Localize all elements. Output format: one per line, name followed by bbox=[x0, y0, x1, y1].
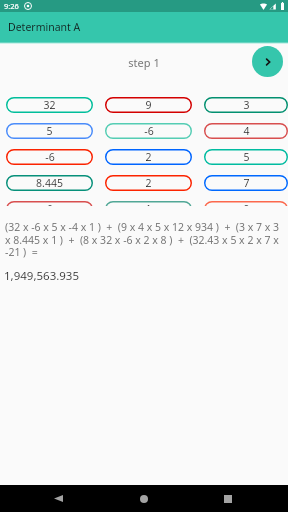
button[interactable]: 5 bbox=[6, 123, 93, 139]
button[interactable]: -6 bbox=[105, 123, 192, 139]
button[interactable]: 2 bbox=[105, 175, 192, 191]
button[interactable]: 7 bbox=[204, 175, 288, 191]
staticText: 5 bbox=[46, 124, 53, 138]
button[interactable]: Next step bbox=[252, 46, 283, 77]
staticText: Determinant A bbox=[8, 20, 81, 34]
staticText: -6 bbox=[45, 150, 55, 164]
staticText: -6 bbox=[144, 124, 154, 138]
button[interactable]: 6 bbox=[6, 201, 93, 206]
staticText: (32 x -6 x 5 x -4 x 1 ) + (9 x 4 x 5 x 1… bbox=[5, 220, 284, 259]
staticText: 9 bbox=[145, 98, 152, 112]
button[interactable]: 9 bbox=[204, 201, 288, 206]
button[interactable]: 5 bbox=[204, 149, 288, 165]
button[interactable]: 2 bbox=[105, 149, 192, 165]
staticText: 2 bbox=[145, 176, 152, 190]
button[interactable]: 8.445 bbox=[6, 175, 93, 191]
button[interactable]: 32 bbox=[6, 97, 93, 113]
button[interactable]: 9 bbox=[105, 97, 192, 113]
button[interactable]: Home bbox=[127, 485, 160, 512]
button[interactable]: Recents bbox=[211, 485, 244, 512]
button[interactable]: -6 bbox=[6, 149, 93, 165]
staticText: 5 bbox=[243, 150, 250, 164]
staticText: 3 bbox=[243, 98, 250, 112]
staticText: 1 bbox=[145, 202, 152, 206]
staticText: 2 bbox=[145, 150, 152, 164]
staticText: step 1 bbox=[0, 55, 288, 70]
staticText: 8.445 bbox=[36, 176, 63, 190]
staticText: 6 bbox=[46, 202, 53, 206]
staticText: 7 bbox=[243, 176, 250, 190]
button[interactable]: 4 bbox=[204, 123, 288, 139]
button[interactable]: 1 bbox=[105, 201, 192, 206]
staticText: 9:26 bbox=[4, 1, 19, 11]
staticText: 9 bbox=[243, 202, 250, 206]
staticText: 1,949,563.935 bbox=[4, 268, 80, 284]
button[interactable]: Back bbox=[42, 485, 75, 512]
staticText: 4 bbox=[243, 124, 250, 138]
staticText: 32 bbox=[43, 98, 56, 112]
button[interactable]: 3 bbox=[204, 97, 288, 113]
